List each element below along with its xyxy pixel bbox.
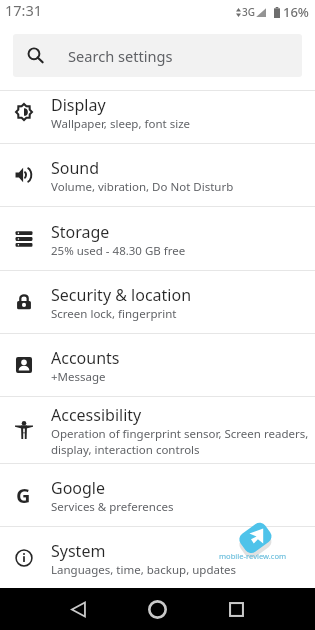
button[interactable]: Search settings bbox=[13, 34, 302, 77]
staticText: 3G bbox=[242, 5, 255, 19]
button[interactable]: System bbox=[0, 527, 315, 590]
staticText: 16% bbox=[283, 3, 309, 21]
staticText: display, interaction controls bbox=[51, 442, 200, 458]
staticText: Screen lock, fingerprint bbox=[51, 306, 177, 322]
button[interactable]: G bbox=[0, 464, 315, 527]
staticText: Sound bbox=[51, 157, 100, 179]
button[interactable]: Display bbox=[0, 81, 315, 144]
button[interactable]: Accessibility bbox=[0, 397, 315, 464]
staticText: Storage bbox=[51, 221, 110, 243]
staticText: mobile-review.com bbox=[219, 551, 287, 561]
staticText: Display bbox=[51, 94, 106, 116]
staticText: System bbox=[51, 540, 106, 562]
staticText: G bbox=[16, 482, 31, 509]
button[interactable]: Back bbox=[49, 588, 107, 630]
button[interactable]: Recent apps bbox=[207, 588, 265, 630]
staticText: Wallpaper, sleep, font size bbox=[51, 116, 191, 132]
button[interactable]: Home bbox=[128, 588, 186, 630]
button[interactable]: Accounts bbox=[0, 334, 315, 397]
staticText: Accounts bbox=[51, 347, 120, 369]
staticText: Security & location bbox=[51, 284, 192, 306]
staticText: Search settings bbox=[68, 46, 173, 66]
button[interactable]: Security & location bbox=[0, 271, 315, 334]
staticText: Google bbox=[51, 477, 106, 499]
button[interactable]: Sound bbox=[0, 144, 315, 207]
staticText: 17:31 bbox=[5, 0, 43, 20]
staticText: +Message bbox=[51, 369, 106, 385]
button[interactable]: Storage bbox=[0, 207, 315, 271]
staticText: Languages, time, backup, updates bbox=[51, 562, 237, 578]
staticText: Operation of fingerprint sensor, Screen … bbox=[51, 426, 309, 442]
staticText: Accessibility bbox=[51, 404, 142, 426]
staticText: 25% used - 48.30 GB free bbox=[51, 243, 186, 259]
staticText: Volume, vibration, Do Not Disturb bbox=[51, 179, 234, 195]
staticText: Services & preferences bbox=[51, 499, 174, 515]
